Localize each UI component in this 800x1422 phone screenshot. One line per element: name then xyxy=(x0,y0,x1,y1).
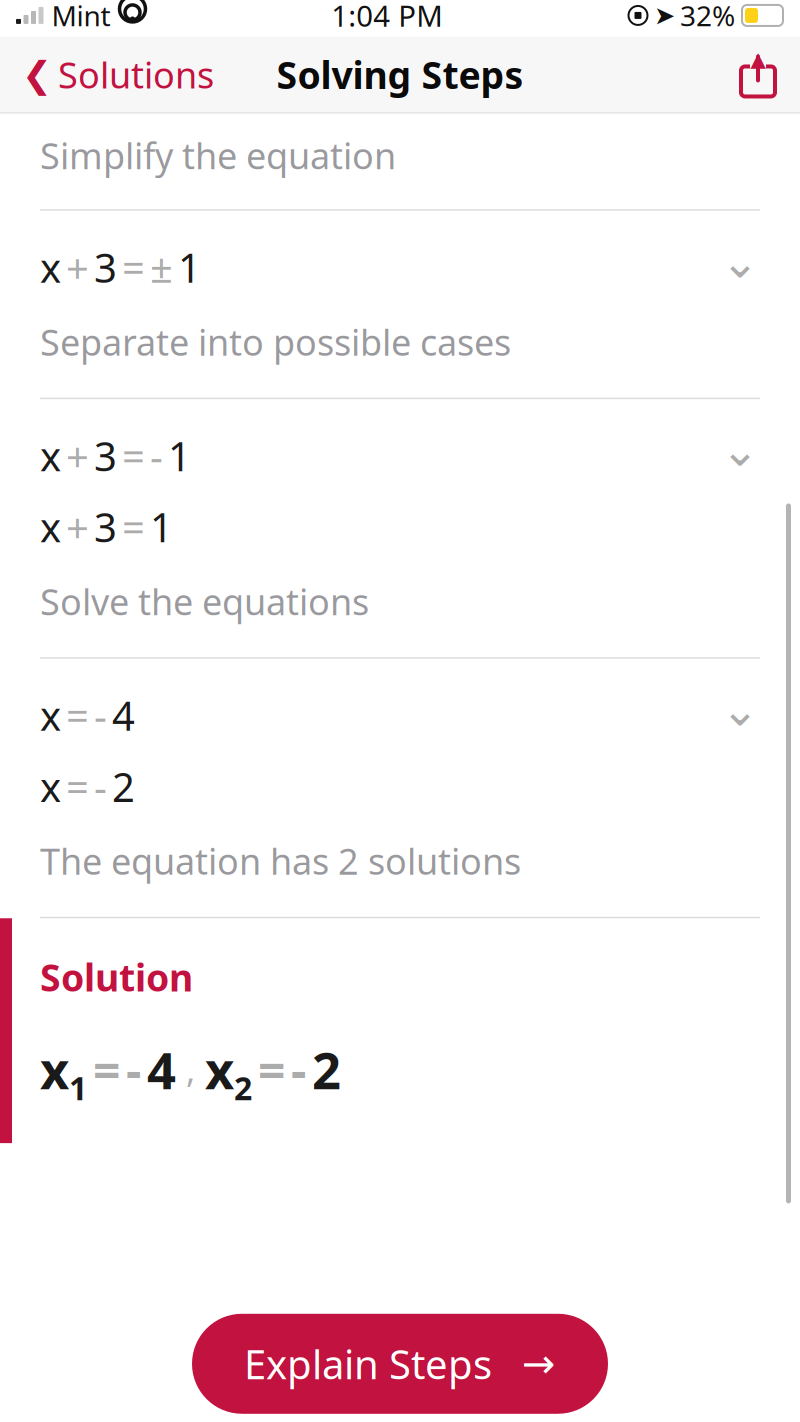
staticText: + xyxy=(66,241,89,294)
staticText: = xyxy=(66,760,89,813)
staticText: 1 xyxy=(168,429,191,482)
staticText: x xyxy=(40,760,61,813)
staticText: 1 xyxy=(178,241,201,294)
staticText: x xyxy=(40,1036,69,1103)
staticText: - xyxy=(291,1038,306,1101)
staticText: Solutions xyxy=(58,50,214,98)
staticText: → xyxy=(522,1341,556,1386)
staticText: x xyxy=(205,1036,234,1103)
staticText: + xyxy=(66,429,89,482)
staticText: 1:04 PM xyxy=(331,0,443,35)
button[interactable]: Share xyxy=(738,46,800,102)
staticText: 4 xyxy=(112,689,135,742)
staticText: Mint xyxy=(51,0,110,34)
staticText: - xyxy=(126,1038,141,1101)
staticText: x xyxy=(40,500,61,553)
staticText: ➤ xyxy=(654,1,675,30)
staticText: The equation has 2 solutions xyxy=(40,837,521,885)
staticText: Solving Steps xyxy=(276,50,523,99)
staticText: - xyxy=(94,689,107,742)
staticText: x xyxy=(40,689,61,742)
staticText: Separate into possible cases xyxy=(40,318,511,366)
staticText: ▲ xyxy=(750,48,765,71)
staticText: 3 xyxy=(94,500,117,553)
button[interactable]: Explain Steps xyxy=(192,1314,608,1414)
staticText: = xyxy=(93,1038,120,1101)
staticText: ⌄ xyxy=(721,684,759,735)
staticText: Simplify the equation xyxy=(40,131,396,179)
button[interactable]: x xyxy=(0,659,800,917)
staticText: 1 xyxy=(69,1067,87,1109)
staticText: 2 xyxy=(312,1036,341,1103)
staticText: 3 xyxy=(94,241,117,294)
button[interactable]: ❮ xyxy=(0,42,214,106)
staticText: - xyxy=(94,760,107,813)
staticText: 4 xyxy=(147,1036,176,1103)
staticText: = xyxy=(66,689,89,742)
staticText: ⌄ xyxy=(721,424,759,476)
staticText: = xyxy=(122,241,145,294)
staticText: 3 xyxy=(94,429,117,482)
staticText: Explain Steps xyxy=(244,1337,492,1390)
staticText: ± xyxy=(150,241,173,294)
staticText: - xyxy=(150,429,163,482)
staticText: ⌄ xyxy=(721,236,759,287)
staticText: 2 xyxy=(112,760,135,813)
button[interactable]: x xyxy=(0,211,800,398)
staticText: Solve the equations xyxy=(40,577,369,625)
staticText: x xyxy=(40,241,61,294)
button[interactable]: x xyxy=(0,399,800,657)
staticText: x xyxy=(40,429,61,482)
staticText: = xyxy=(122,429,145,482)
staticText: = xyxy=(122,500,145,553)
staticText: 32% xyxy=(680,0,735,34)
staticText: , xyxy=(186,1046,195,1092)
staticText: ❮ xyxy=(22,54,52,95)
staticText: 2 xyxy=(234,1067,252,1109)
staticText: Solution xyxy=(40,952,193,1002)
staticText: + xyxy=(66,500,89,553)
staticText: 1 xyxy=(150,500,173,553)
staticText: = xyxy=(258,1038,285,1101)
